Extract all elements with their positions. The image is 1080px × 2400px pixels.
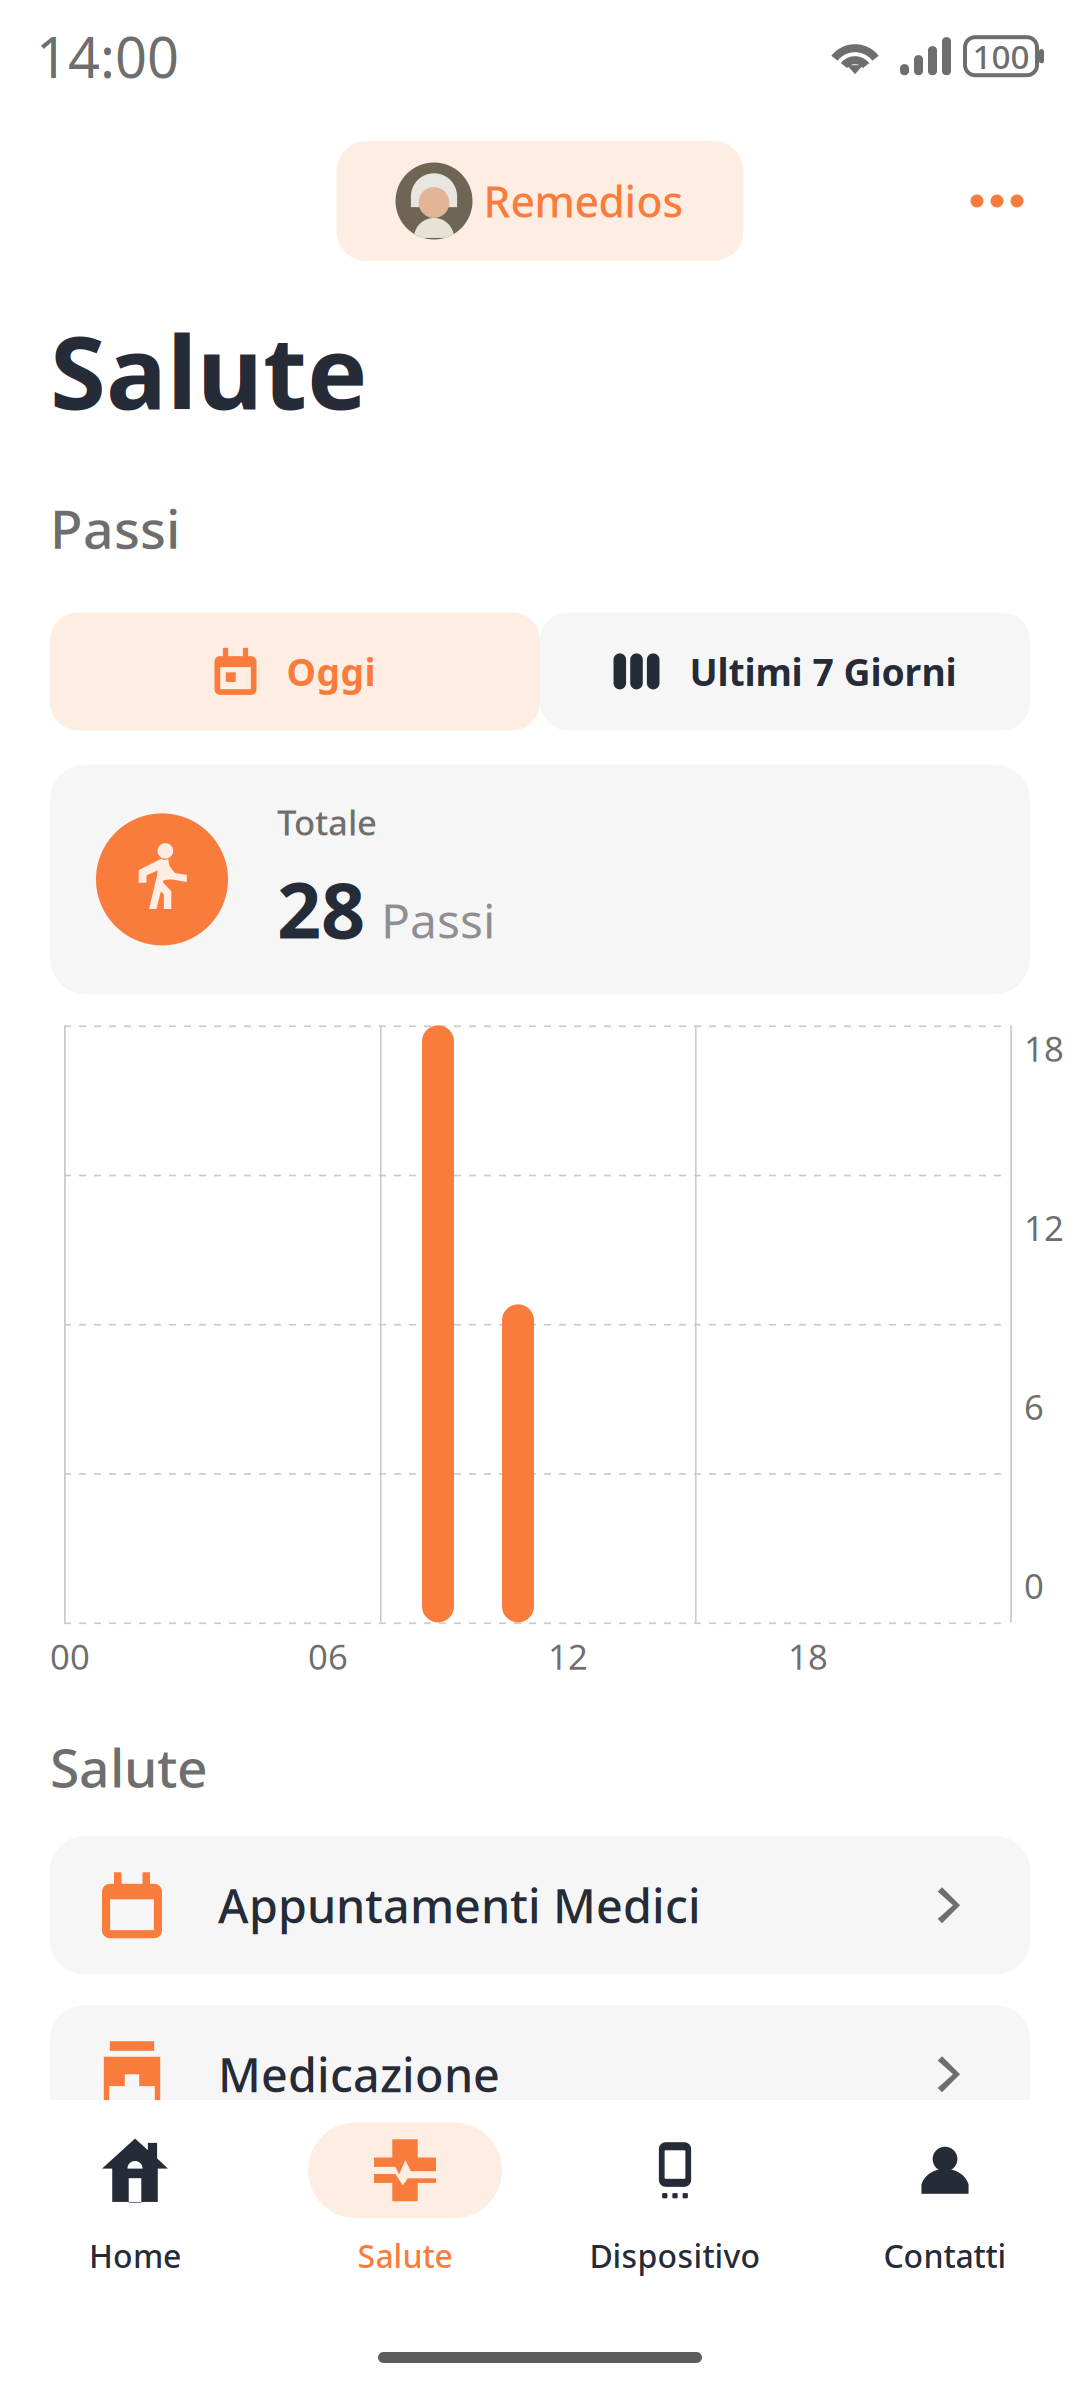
staticText: 100	[972, 34, 1029, 78]
staticText: 28	[277, 857, 365, 960]
staticText: 00	[50, 1633, 90, 1679]
staticText: Ultimi 7 Giorni	[689, 647, 956, 696]
button[interactable]: Contatti	[810, 2107, 1080, 2307]
staticText: Medicazione	[218, 2043, 500, 2105]
button[interactable]: Ultimi 7 Giorni	[540, 612, 1030, 730]
button[interactable]: Home	[0, 2107, 270, 2307]
staticText: Salute	[50, 1731, 208, 1802]
staticText: Passi	[381, 888, 495, 952]
staticText: Dispositivo	[589, 2234, 760, 2277]
staticText: Totale	[277, 799, 377, 845]
staticText: Home	[89, 2234, 181, 2277]
button[interactable]: Medicazione	[50, 2005, 1030, 2143]
staticText: 14:00	[36, 19, 179, 93]
staticText: Passi	[50, 493, 180, 563]
staticText: 12	[1024, 1204, 1064, 1250]
button[interactable]: More options	[942, 166, 1052, 236]
staticText: Salute	[50, 303, 367, 438]
staticText: Salute	[357, 2234, 452, 2277]
button[interactable]: Dispositivo	[540, 2107, 810, 2307]
staticText: 0	[1024, 1562, 1044, 1608]
staticText: 18	[1024, 1025, 1064, 1071]
button[interactable]: Remedios	[336, 141, 743, 261]
staticText: 6	[1024, 1383, 1044, 1429]
staticText: Contatti	[883, 2234, 1006, 2277]
staticText: 06	[308, 1633, 348, 1679]
staticText: Oggi	[286, 647, 375, 696]
button[interactable]: Salute	[270, 2107, 540, 2307]
button[interactable]: Appuntamenti Medici	[50, 1836, 1030, 1974]
button[interactable]: Oggi	[50, 612, 540, 730]
staticText: Appuntamenti Medici	[218, 1874, 701, 1936]
staticText: 18	[788, 1633, 828, 1679]
staticText: 12	[548, 1633, 588, 1679]
staticText: Remedios	[483, 173, 683, 229]
